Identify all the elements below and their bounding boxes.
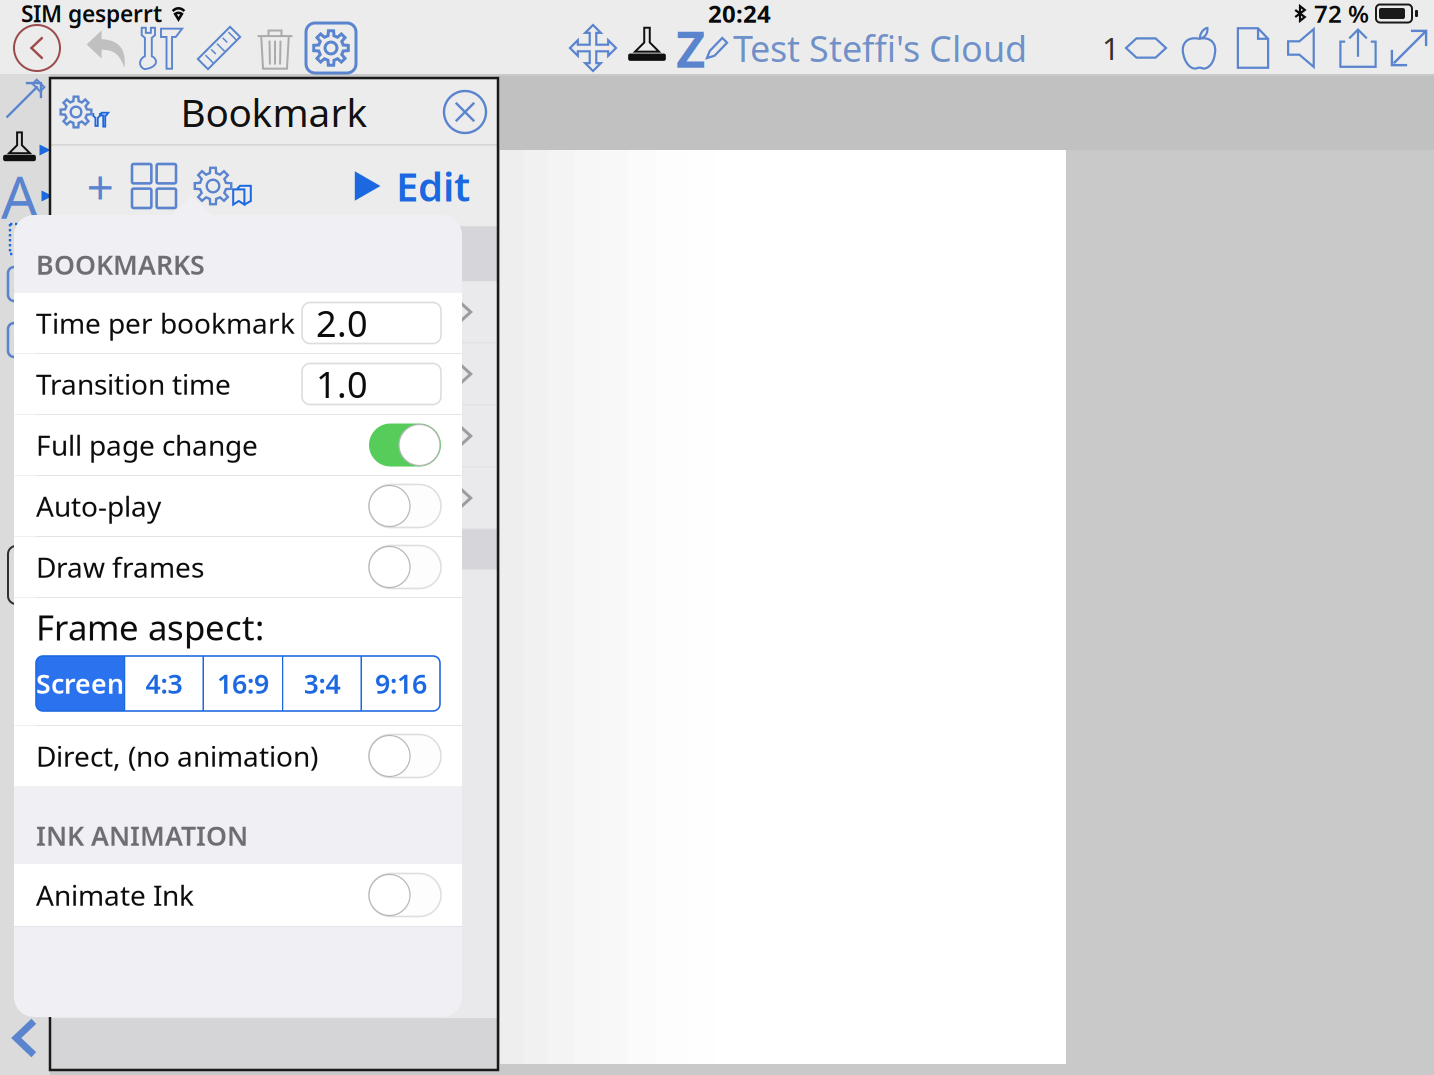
button[interactable]: Shape tool bbox=[0, 262, 50, 306]
button[interactable]: Auto-play bbox=[14, 476, 462, 536]
staticText: BOOKMARKS bbox=[36, 247, 205, 282]
button[interactable]: Ruler bbox=[196, 25, 242, 71]
button[interactable]: Bookmark settings bbox=[194, 167, 252, 205]
button[interactable]: Apple bbox=[1178, 27, 1220, 69]
button[interactable]: Back bbox=[14, 25, 60, 71]
staticText: INK ANIMATION bbox=[36, 818, 248, 853]
staticText: Edit bbox=[396, 159, 470, 212]
button[interactable]: Tools bbox=[138, 25, 184, 71]
button[interactable]: 3:4 bbox=[283, 656, 360, 711]
button[interactable]: Draw frames bbox=[14, 537, 462, 597]
staticText: Screen bbox=[36, 666, 124, 701]
button[interactable]: Animate Ink bbox=[14, 864, 462, 926]
staticText: Time per bookmark bbox=[36, 304, 295, 342]
staticText: Frame aspect: bbox=[36, 604, 264, 650]
button[interactable]: Stamp bbox=[624, 25, 670, 71]
staticText: Z bbox=[676, 14, 705, 82]
button[interactable]: Pen tool bbox=[0, 78, 50, 120]
button[interactable]: Move bbox=[570, 25, 616, 71]
staticText: + bbox=[86, 154, 113, 218]
button[interactable]: Zoom Notes bbox=[676, 14, 729, 82]
button[interactable]: 16:9 bbox=[204, 656, 282, 711]
staticText: 1.0 bbox=[316, 360, 368, 408]
button[interactable]: Audio bbox=[1286, 27, 1328, 69]
button[interactable]: 9:16 bbox=[362, 656, 440, 711]
button[interactable]: Direct, (no animation) bbox=[14, 726, 462, 786]
staticText: 72 % bbox=[1314, 0, 1369, 29]
staticText: Animate Ink bbox=[36, 876, 194, 914]
button[interactable]: Delete bbox=[252, 25, 298, 71]
staticText: 3:4 bbox=[303, 666, 340, 701]
button[interactable]: Page bbox=[1126, 28, 1166, 68]
staticText: SIM gesperrt bbox=[21, 0, 162, 28]
button[interactable]: Share bbox=[1338, 28, 1378, 68]
staticText: 9:16 bbox=[375, 666, 427, 701]
staticText: 1 bbox=[1102, 28, 1120, 68]
staticText: 20:24 bbox=[708, 0, 771, 29]
button[interactable]: Time per bookmark bbox=[14, 293, 462, 353]
button[interactable]: Brush tool bbox=[0, 128, 50, 172]
staticText: Transition time bbox=[36, 365, 231, 403]
staticText: Auto-play bbox=[36, 487, 161, 525]
button[interactable]: Text tool bbox=[0, 174, 50, 218]
button[interactable]: Close bbox=[444, 91, 486, 133]
staticText: Bookmark bbox=[180, 86, 367, 138]
staticText: 4:3 bbox=[145, 666, 182, 701]
button[interactable]: Screen bbox=[36, 656, 124, 711]
button[interactable]: Select tool bbox=[0, 220, 50, 258]
button[interactable]: Transition time bbox=[14, 354, 462, 414]
button[interactable]: Full page change bbox=[14, 415, 462, 475]
button[interactable]: Settings bbox=[306, 23, 356, 73]
button[interactable]: Undo bbox=[84, 26, 128, 70]
staticText: 16:9 bbox=[217, 666, 269, 701]
staticText: Draw frames bbox=[36, 548, 204, 586]
staticText: 2.0 bbox=[316, 299, 368, 347]
button[interactable]: Add bookmark bbox=[78, 164, 122, 208]
button[interactable]: Full screen bbox=[1390, 29, 1428, 67]
button[interactable]: Bookmark tools bbox=[60, 96, 109, 128]
button[interactable]: 4:3 bbox=[125, 656, 202, 711]
button[interactable]: Document bbox=[1232, 27, 1274, 69]
button[interactable]: Edit bbox=[350, 159, 470, 212]
staticText: A bbox=[1, 157, 38, 235]
button[interactable]: Grid view bbox=[132, 164, 176, 208]
staticText: Test Steffi's Cloud bbox=[733, 24, 1027, 72]
staticText: Full page change bbox=[36, 426, 258, 464]
button[interactable]: Collapse sidebar bbox=[0, 1013, 50, 1063]
staticText: Direct, (no animation) bbox=[36, 737, 318, 775]
button[interactable]: Line tool bbox=[0, 318, 50, 362]
